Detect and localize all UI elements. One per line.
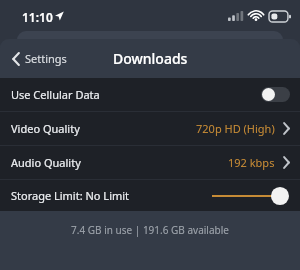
staticText: 11:10 bbox=[22, 9, 53, 25]
button[interactable]: Storage Limit: No Limit bbox=[0, 180, 300, 211]
staticText: Video Quality bbox=[11, 121, 80, 136]
button[interactable]: Settings bbox=[8, 46, 71, 71]
button[interactable]: Audio Quality bbox=[0, 146, 300, 179]
button[interactable]: Storage limit slider bbox=[212, 185, 290, 207]
staticText: Audio Quality bbox=[11, 155, 81, 170]
button[interactable]: Use Cellular Data bbox=[0, 78, 300, 111]
staticText: Storage Limit: No Limit bbox=[11, 188, 130, 203]
staticText: 720p HD (High) bbox=[196, 121, 275, 136]
button[interactable]: Use Cellular Data toggle bbox=[261, 87, 290, 102]
staticText: Settings bbox=[25, 51, 67, 66]
staticText: 192 kbps bbox=[228, 155, 275, 170]
staticText: Use Cellular Data bbox=[11, 87, 100, 102]
staticText: 7.4 GB in use | 191.6 GB available bbox=[0, 223, 300, 237]
button[interactable]: Video Quality bbox=[0, 112, 300, 145]
staticText: Downloads bbox=[113, 49, 188, 68]
